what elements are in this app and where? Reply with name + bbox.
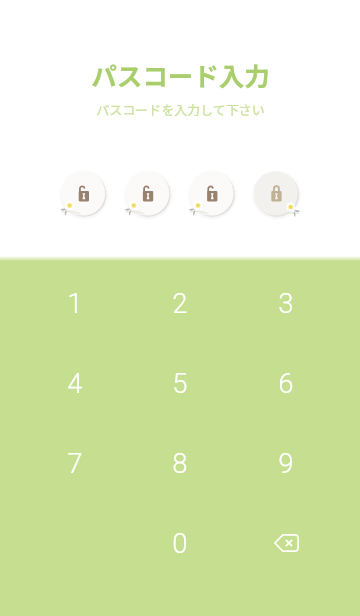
- staticText: 3: [278, 287, 294, 319]
- staticText: 4: [67, 367, 83, 399]
- staticText: 2: [172, 287, 188, 319]
- staticText: 9: [278, 447, 294, 479]
- staticText: パスコード入力: [91, 56, 270, 93]
- staticText: 7: [67, 447, 83, 479]
- button[interactable]: 4: [40, 355, 110, 411]
- button[interactable]: 0: [145, 515, 215, 571]
- button[interactable]: Backspace: [251, 515, 321, 571]
- button[interactable]: 1: [40, 275, 110, 331]
- button[interactable]: 9: [251, 435, 321, 491]
- button[interactable]: 5: [145, 355, 215, 411]
- button[interactable]: 7: [40, 435, 110, 491]
- staticText: 0: [172, 527, 188, 559]
- button[interactable]: 8: [145, 435, 215, 491]
- button[interactable]: 2: [145, 275, 215, 331]
- staticText: パスコードを入力して下さい: [96, 100, 265, 119]
- staticText: 5: [172, 367, 188, 399]
- button[interactable]: 3: [251, 275, 321, 331]
- staticText: 1: [67, 287, 83, 319]
- staticText: 8: [172, 447, 188, 479]
- button[interactable]: 6: [251, 355, 321, 411]
- staticText: 6: [278, 367, 294, 399]
